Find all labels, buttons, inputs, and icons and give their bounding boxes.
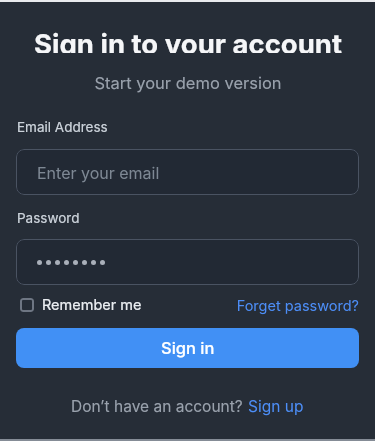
button[interactable]: Sign in: [16, 328, 359, 368]
staticText: Enter your email: [37, 163, 160, 182]
staticText: Sign in to your account: [34, 27, 342, 53]
button[interactable]: Remember me: [20, 296, 142, 314]
button[interactable]: Forget password?: [200, 296, 359, 316]
staticText: Forget password?: [236, 297, 359, 315]
staticText: Email Address: [17, 119, 108, 135]
staticText: Sign up: [248, 397, 304, 416]
staticText: Password: [17, 210, 80, 226]
staticText: Remember me: [42, 296, 142, 314]
button[interactable]: Enter your email: [16, 149, 359, 195]
staticText: Start your demo version: [94, 73, 282, 93]
staticText: Don’t have an account?: [71, 397, 248, 416]
button[interactable]: [16, 239, 359, 285]
button[interactable]: Don’t have an account?: [0, 396, 375, 416]
staticText: Sign in: [161, 338, 215, 358]
